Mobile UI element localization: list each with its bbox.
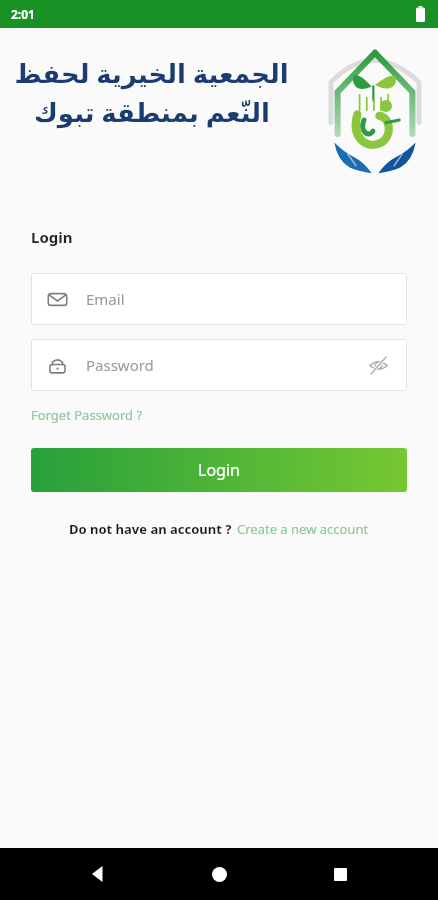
staticText: Password: [86, 355, 154, 375]
button[interactable]: Recent apps: [317, 851, 363, 897]
staticText: Create a new account: [237, 520, 369, 538]
staticText: Login: [198, 459, 240, 481]
staticText: الجمعية الخيرية لحفظ: [14, 55, 289, 90]
staticText: النّعم بمنطقة تبوك: [34, 94, 270, 129]
staticText: Login: [31, 227, 73, 247]
button[interactable]: Email: [31, 273, 407, 325]
button[interactable]: Password: [31, 339, 407, 391]
staticText: Do not have an account ?: [69, 520, 232, 538]
staticText: Email: [86, 289, 125, 309]
button[interactable]: Login: [31, 448, 407, 492]
staticText: 2:01: [11, 6, 35, 22]
button[interactable]: Show password: [365, 352, 391, 378]
button[interactable]: Back: [75, 851, 121, 897]
staticText: Forget Password ?: [31, 406, 143, 424]
button[interactable]: Forget Password ?: [31, 404, 143, 426]
button[interactable]: Create a new account: [237, 520, 369, 538]
button[interactable]: Home: [196, 851, 242, 897]
